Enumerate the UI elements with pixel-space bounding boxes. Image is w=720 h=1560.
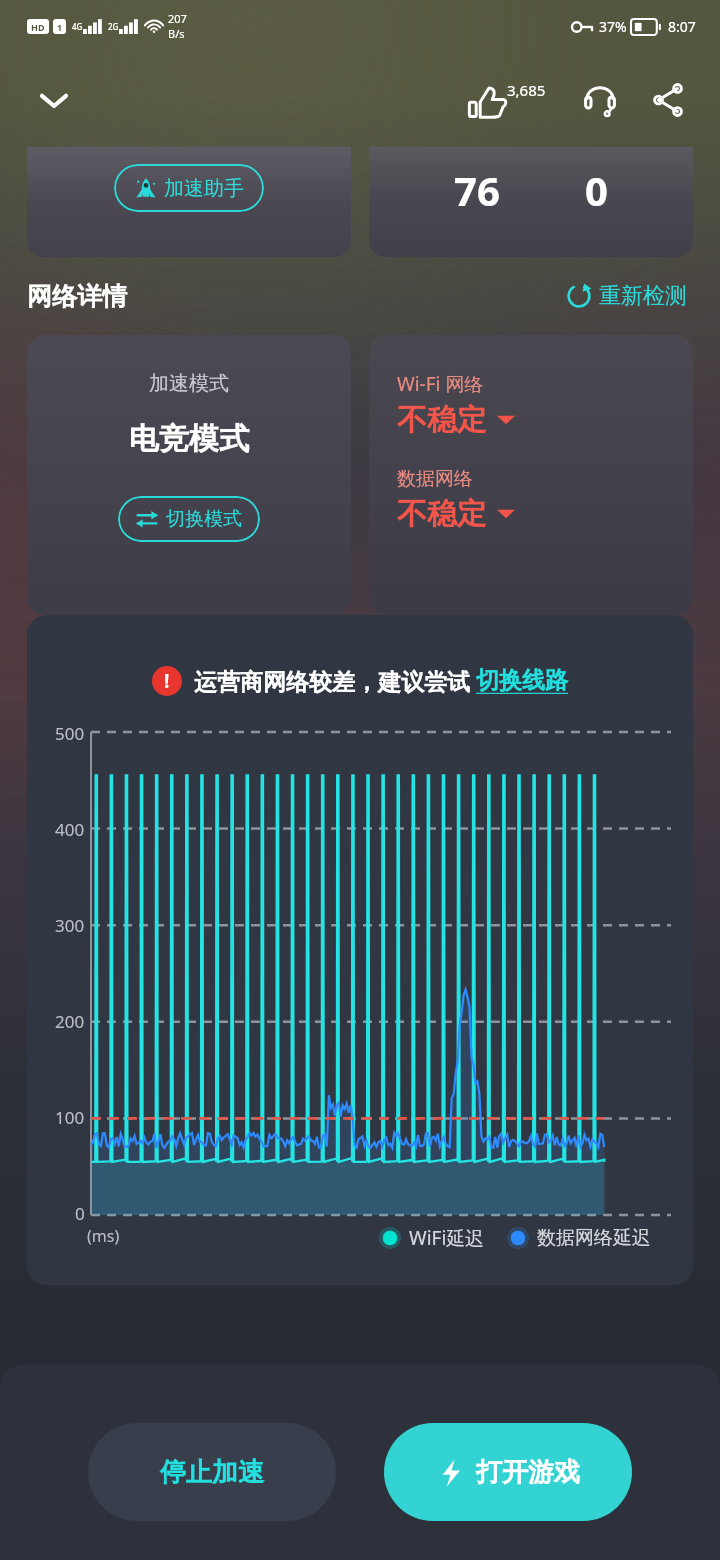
staticText: 207 xyxy=(168,11,187,26)
staticText: 数据网络延迟 xyxy=(537,1226,651,1250)
staticText: 100 xyxy=(55,1106,85,1129)
staticText: ! xyxy=(164,668,170,694)
button[interactable]: 76 xyxy=(369,147,693,257)
button[interactable]: 切换模式 xyxy=(118,496,260,542)
staticText: Wi-Fi 网络 xyxy=(397,371,484,397)
staticText: 4G xyxy=(72,21,83,32)
button[interactable]: Share xyxy=(644,76,692,124)
staticText: 500 xyxy=(55,722,85,745)
button[interactable]: 打开游戏 xyxy=(384,1423,632,1521)
staticText: HD xyxy=(31,21,45,33)
staticText: 切换模式 xyxy=(166,507,242,531)
staticText: 8:07 xyxy=(668,17,696,36)
button[interactable]: 停止加速 xyxy=(88,1423,336,1521)
staticText: 76 xyxy=(454,163,500,217)
button[interactable]: 加速模式 xyxy=(27,335,351,615)
staticText: 切换线路 xyxy=(476,666,568,695)
staticText: 37% xyxy=(599,17,627,36)
button[interactable]: Like 3,685 xyxy=(463,72,550,128)
button[interactable]: 切换线路 xyxy=(476,666,568,695)
staticText: 200 xyxy=(55,1010,85,1033)
staticText: 加速模式 xyxy=(149,371,229,396)
staticText: 运营商网络较差，建议尝试 xyxy=(194,665,476,696)
staticText: 0 xyxy=(75,1202,85,1225)
button[interactable]: 重新检测 xyxy=(560,276,693,316)
staticText: 2G xyxy=(108,21,119,32)
staticText: (ms) xyxy=(87,1225,120,1247)
staticText: 电竞模式 xyxy=(129,420,249,458)
staticText: 不稳定 xyxy=(397,401,487,439)
staticText: 300 xyxy=(55,914,85,937)
button[interactable]: Collapse xyxy=(26,72,82,128)
staticText: 打开游戏 xyxy=(476,1456,580,1489)
staticText: 400 xyxy=(55,818,85,841)
staticText: 重新检测 xyxy=(599,282,687,310)
button[interactable]: Customer service xyxy=(576,76,624,124)
staticText: 3,685 xyxy=(507,80,546,100)
staticText: B/s xyxy=(168,26,185,41)
button[interactable]: 不稳定 xyxy=(397,495,515,533)
staticText: 停止加速 xyxy=(160,1456,264,1489)
staticText: 加速助手 xyxy=(164,176,244,201)
button[interactable]: 不稳定 xyxy=(397,401,515,439)
staticText: 数据网络 xyxy=(397,467,473,491)
staticText: 0 xyxy=(585,163,608,217)
staticText: 1 xyxy=(57,21,63,33)
staticText: 网络详情 xyxy=(27,281,127,312)
staticText: 不稳定 xyxy=(397,495,487,533)
button[interactable]: 加速助手 xyxy=(27,147,351,257)
staticText: WiFi延迟 xyxy=(409,1225,485,1251)
